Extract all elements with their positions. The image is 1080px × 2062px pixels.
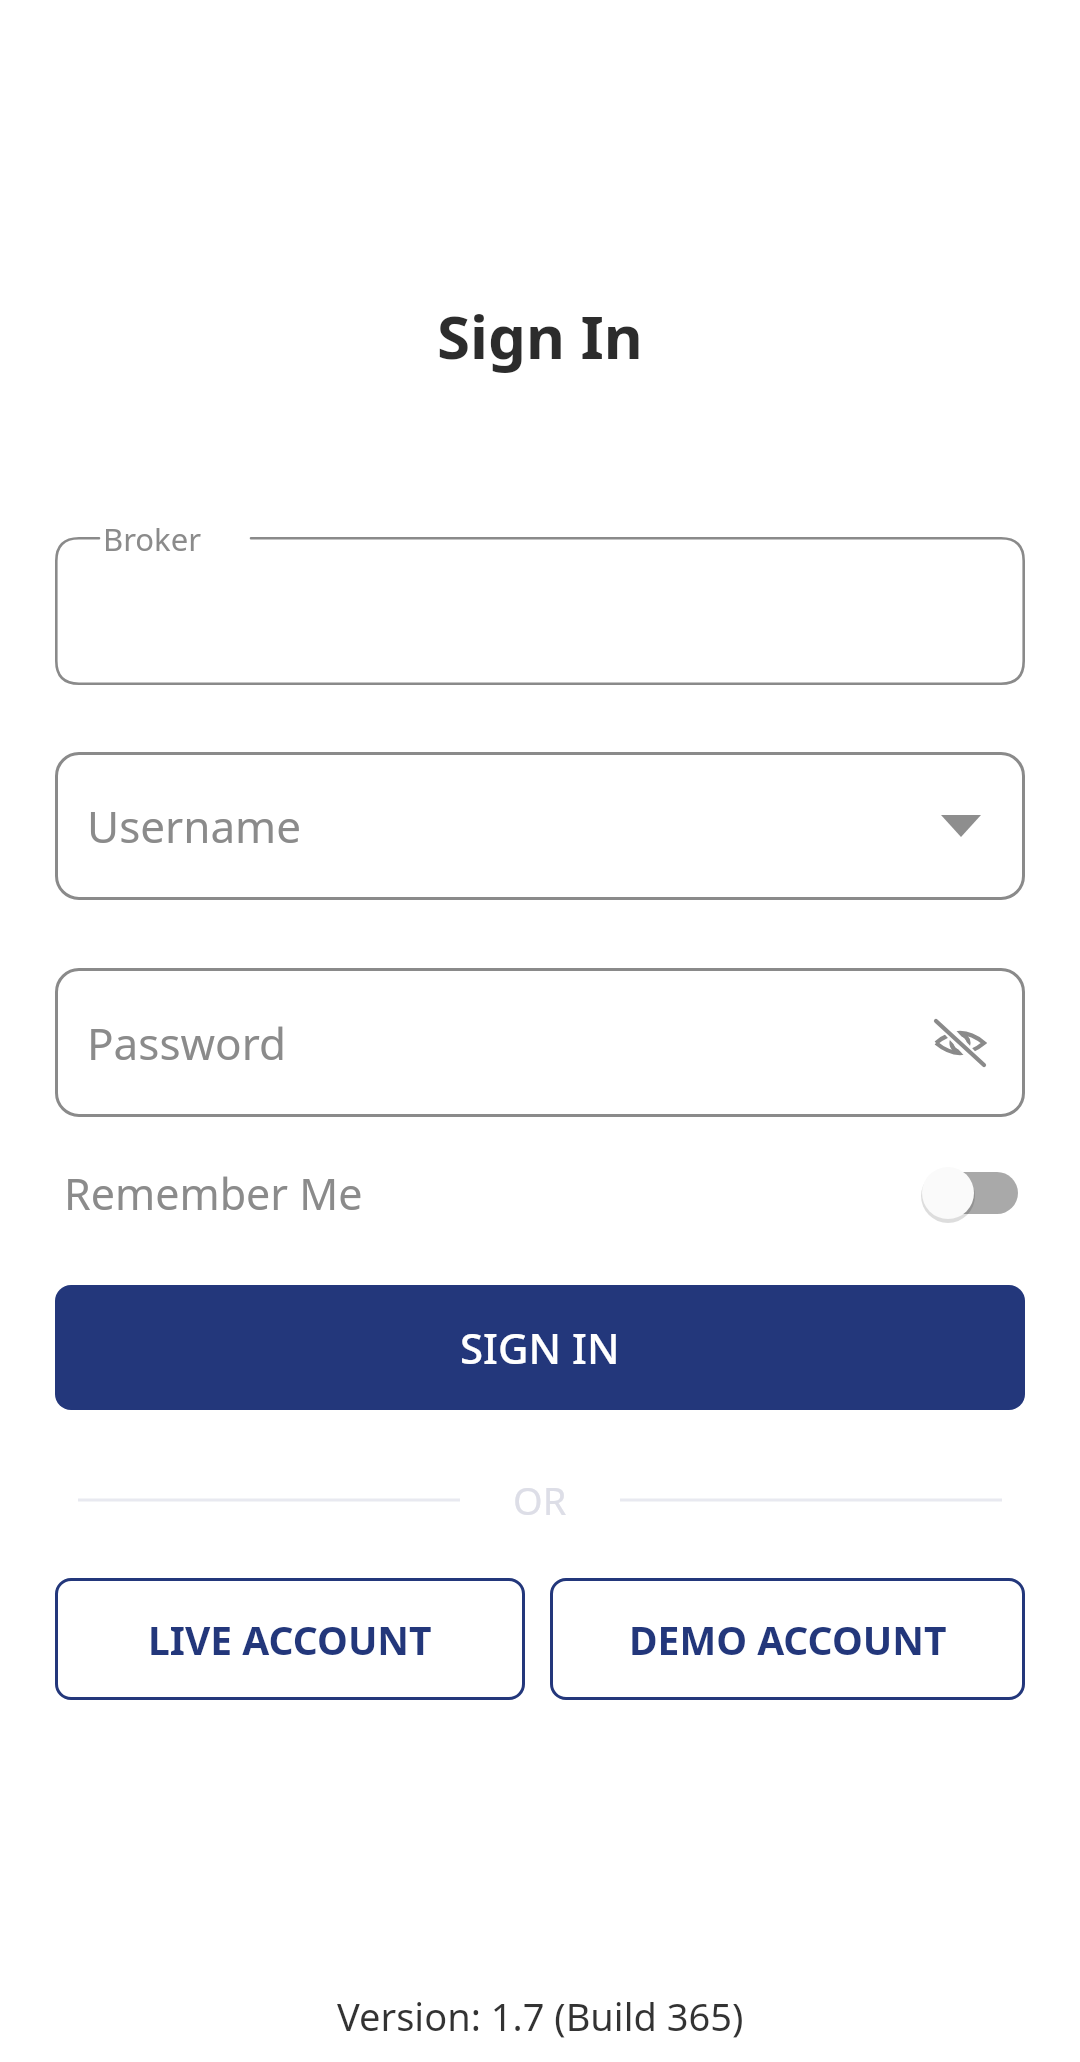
- button[interactable]: Show password: [925, 1008, 995, 1078]
- staticText: LIVE ACCOUNT: [148, 1613, 432, 1666]
- staticText: SIGN IN: [460, 1319, 620, 1376]
- button[interactable]: Broker: [55, 537, 1025, 685]
- staticText: Remember Me: [64, 1164, 363, 1223]
- staticText: Password: [87, 1013, 287, 1073]
- staticText: DEMO ACCOUNT: [629, 1613, 947, 1666]
- staticText: Sign In: [437, 295, 643, 377]
- staticText: OR: [513, 1474, 567, 1526]
- button[interactable]: LIVE ACCOUNT: [55, 1578, 525, 1700]
- button[interactable]: Username: [55, 752, 1025, 900]
- button[interactable]: DEMO ACCOUNT: [550, 1578, 1025, 1700]
- button[interactable]: Password: [55, 968, 1025, 1117]
- button[interactable]: Remember Me toggle: [914, 1161, 1024, 1225]
- button[interactable]: SIGN IN: [55, 1285, 1025, 1410]
- staticText: Username: [87, 796, 302, 856]
- staticText: Broker: [103, 518, 201, 560]
- button[interactable]: Remember Me: [0, 1150, 1080, 1236]
- staticText: Version: 1.7 (Build 365): [337, 1990, 744, 2042]
